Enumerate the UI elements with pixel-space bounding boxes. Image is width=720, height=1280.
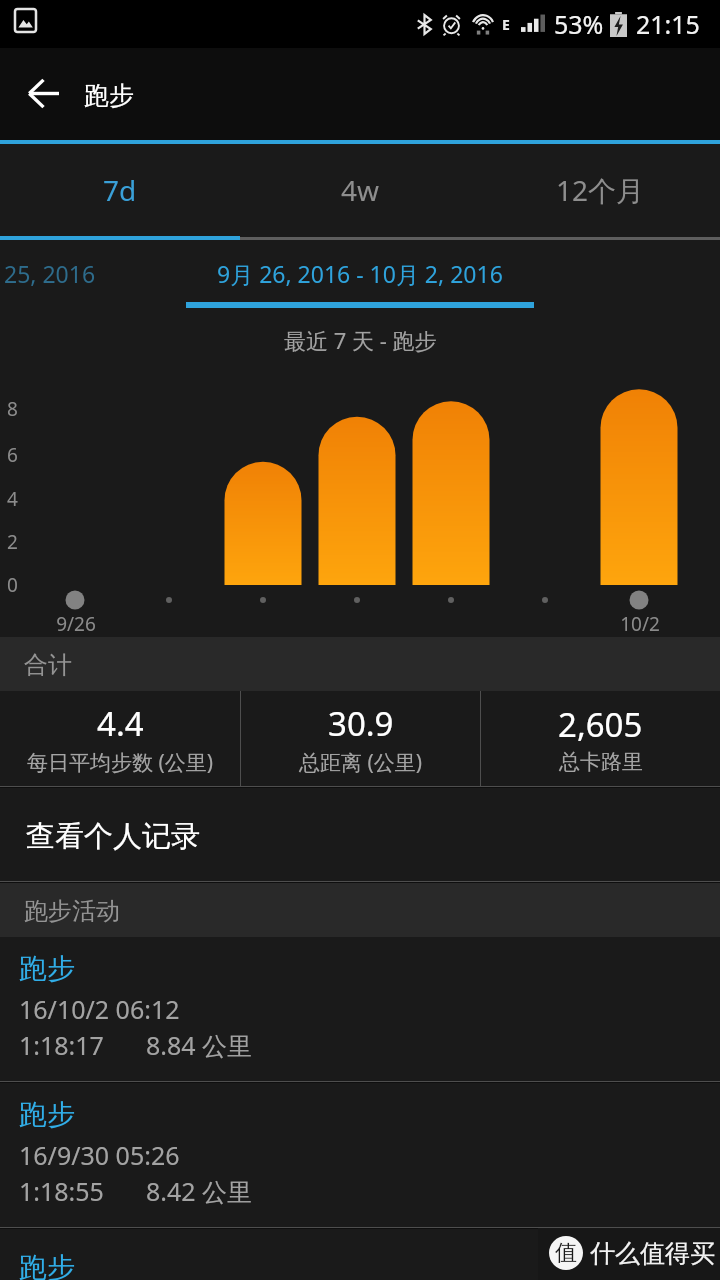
button[interactable]: 查看个人记录	[0, 788, 720, 881]
staticText: 12个月	[556, 171, 645, 209]
staticText: 查看个人记录	[26, 818, 200, 855]
staticText: 6	[7, 442, 18, 468]
staticText: 合计	[24, 650, 72, 680]
staticText: 什么值得买	[590, 1238, 715, 1269]
staticText: 跑步	[84, 80, 134, 111]
staticText: 16/10/2 06:12	[19, 992, 180, 1026]
staticText: 1:18:55	[19, 1174, 104, 1208]
staticText: 30.9	[328, 701, 394, 746]
staticText: 4.4	[97, 701, 144, 746]
staticText: E	[502, 15, 510, 34]
staticText: 10/2	[601, 611, 679, 637]
button[interactable]: 7d	[0, 144, 240, 240]
staticText: 1:18:17	[19, 1028, 104, 1062]
staticText: 跑步	[19, 1250, 75, 1280]
staticText: 总卡路里	[559, 749, 643, 775]
staticText: 8.84 公里	[146, 1028, 253, 1062]
button[interactable]: 12个月	[480, 144, 720, 240]
staticText: 2	[7, 529, 18, 555]
button[interactable]: 跑步	[0, 1083, 720, 1229]
button[interactable]: 跑步	[0, 1229, 720, 1280]
staticText: 21:15	[636, 7, 700, 41]
staticText: 8	[7, 396, 18, 422]
staticText: 每日平均步数 (公里)	[27, 748, 214, 777]
button[interactable]: 2,605	[481, 691, 720, 786]
staticText: 25, 2016	[4, 258, 96, 289]
staticText: 最近 7 天 - 跑步	[284, 325, 437, 355]
staticText: 跑步活动	[24, 896, 120, 926]
staticText: 总距离 (公里)	[299, 748, 423, 777]
staticText: 值	[555, 1239, 577, 1267]
staticText: 53%	[554, 7, 604, 41]
button[interactable]: Back	[18, 68, 68, 118]
staticText: 0	[7, 572, 18, 598]
staticText: 跑步	[19, 1097, 75, 1132]
button[interactable]: 4.4	[0, 691, 240, 786]
staticText: 16/9/30 05:26	[19, 1138, 180, 1172]
staticText: 4w	[341, 171, 380, 209]
staticText: 9/26	[37, 611, 115, 637]
staticText: 2,605	[558, 702, 643, 747]
button[interactable]: 4w	[240, 144, 480, 240]
staticText: 9月 26, 2016 - 10月 2, 2016	[217, 258, 503, 289]
button[interactable]: 跑步	[0, 937, 720, 1083]
button[interactable]: 30.9	[241, 691, 480, 786]
staticText: 跑步	[19, 951, 75, 986]
staticText: 8.42 公里	[146, 1174, 253, 1208]
staticText: 4	[7, 486, 18, 512]
staticText: 7d	[103, 171, 137, 209]
